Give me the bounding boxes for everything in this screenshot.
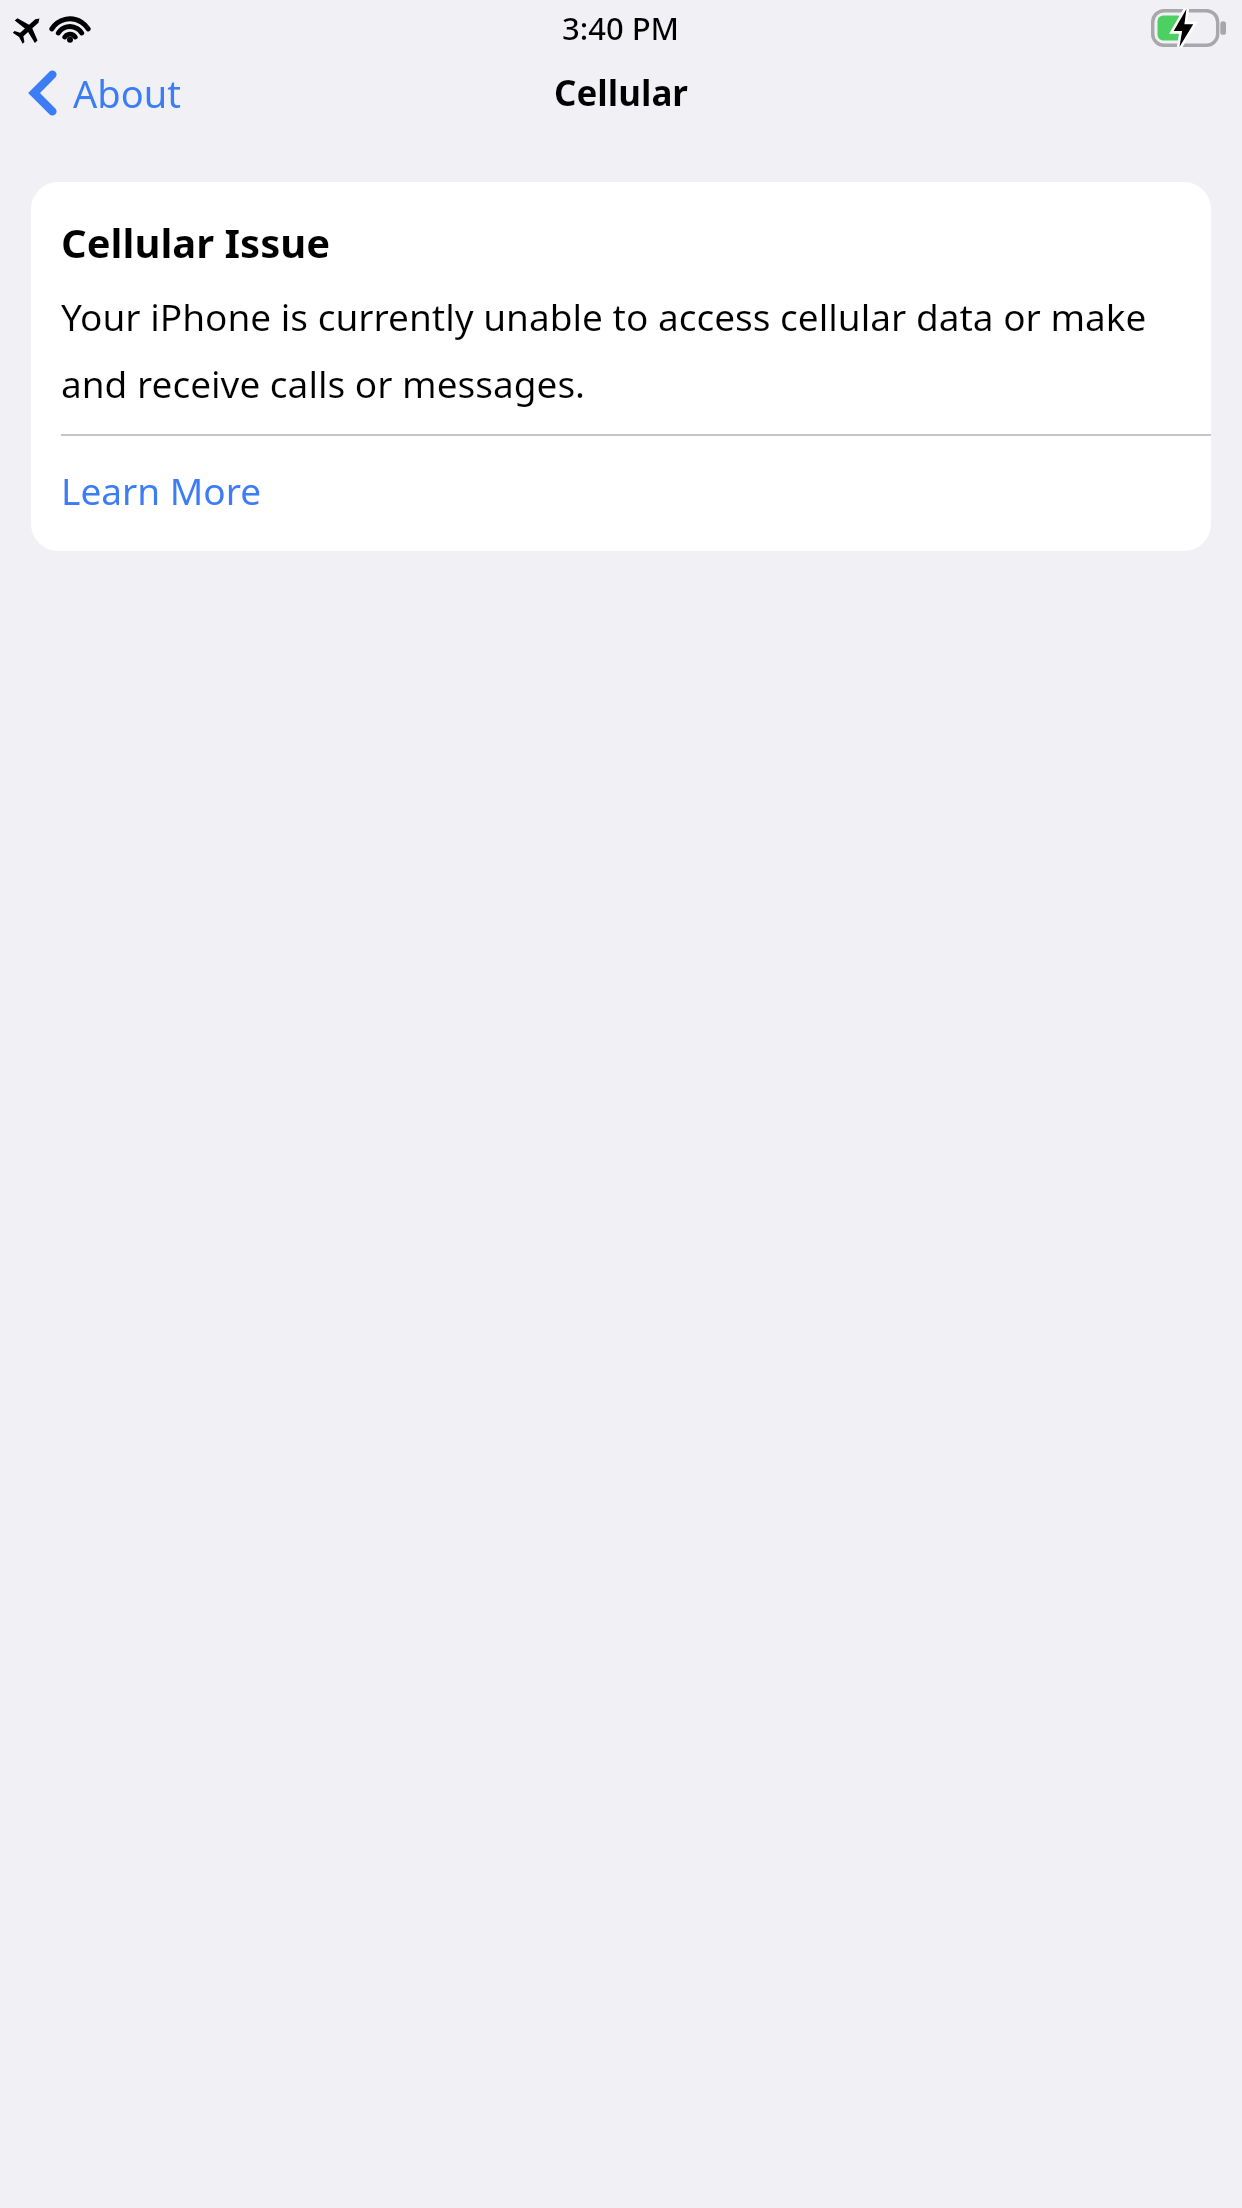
staticText: About xyxy=(73,67,181,119)
staticText: Cellular Issue xyxy=(61,215,331,269)
staticText: 3:40 PM xyxy=(562,7,680,49)
staticText: Cellular xyxy=(554,69,689,117)
button[interactable]: Learn More xyxy=(31,436,1211,551)
other: Battery charging xyxy=(1151,9,1227,47)
staticText: Learn More xyxy=(61,465,262,515)
staticText: Your iPhone is currently unable to acces… xyxy=(61,291,1187,408)
button[interactable]: About xyxy=(0,61,201,125)
